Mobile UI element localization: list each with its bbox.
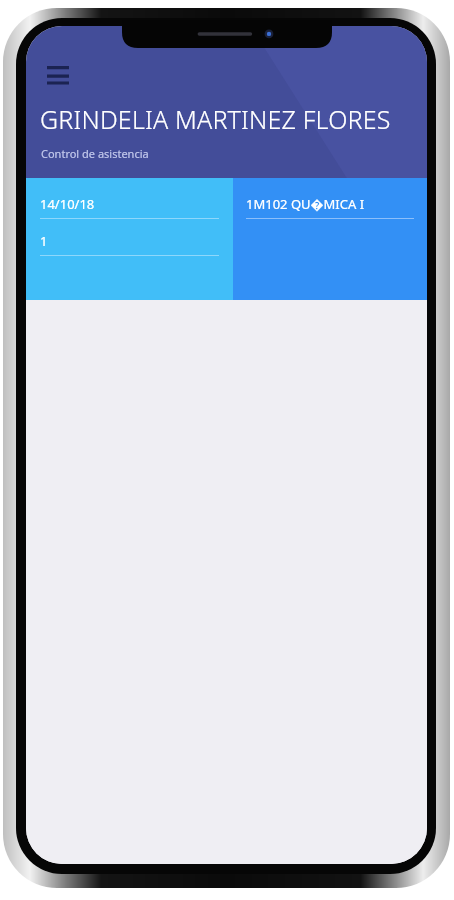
button[interactable]: 1M102 QU�MICA I: [233, 178, 427, 300]
button[interactable]: 14/10/18: [26, 178, 233, 300]
staticText: 1: [40, 232, 48, 250]
staticText: Control de asistencia: [41, 146, 149, 161]
staticText: GRINDELIA MARTINEZ FLORES: [40, 102, 391, 136]
staticText: 1M102 QU�MICA I: [246, 195, 365, 213]
button[interactable]: Open navigation menu: [36, 52, 80, 96]
staticText: 14/10/18: [40, 195, 95, 213]
